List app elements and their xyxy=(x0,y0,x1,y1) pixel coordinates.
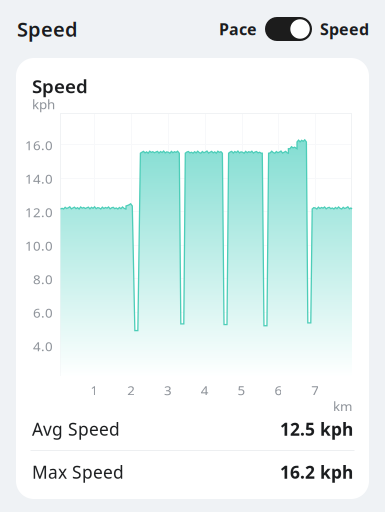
staticText: Pace xyxy=(219,18,257,40)
staticText: km xyxy=(333,397,352,415)
staticText: 1 xyxy=(90,381,98,399)
staticText: 8.0 xyxy=(33,270,53,288)
staticText: 4 xyxy=(201,381,209,399)
staticText: Speed xyxy=(32,74,88,98)
button[interactable]: Avg Speed xyxy=(16,408,369,450)
staticText: 6.0 xyxy=(33,304,53,321)
staticText: 10.0 xyxy=(25,237,53,254)
staticText: 5 xyxy=(238,381,246,399)
button[interactable]: Pace xyxy=(219,17,369,41)
staticText: 16.0 xyxy=(25,136,53,154)
staticText: 12.0 xyxy=(25,203,53,221)
staticText: Speed xyxy=(320,18,369,40)
staticText: 16.2 kph xyxy=(280,460,353,483)
staticText: Speed xyxy=(17,16,78,42)
staticText: 14.0 xyxy=(25,170,53,187)
staticText: 12.5 kph xyxy=(280,417,353,440)
staticText: Max Speed xyxy=(32,460,124,483)
staticText: 6 xyxy=(274,381,282,399)
staticText: kph xyxy=(32,95,55,113)
button[interactable]: Max Speed xyxy=(16,451,369,493)
staticText: 4.0 xyxy=(33,337,53,355)
staticText: 2 xyxy=(127,381,135,399)
staticText: 3 xyxy=(164,381,172,399)
staticText: Avg Speed xyxy=(32,417,120,440)
staticText: 7 xyxy=(311,381,319,399)
